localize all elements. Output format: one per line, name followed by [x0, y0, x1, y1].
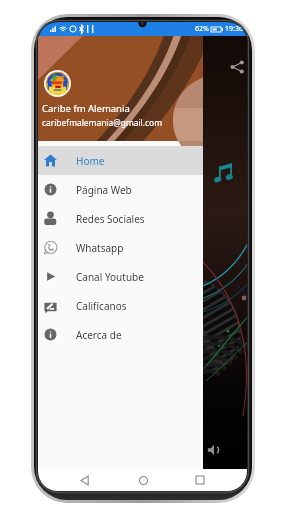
button[interactable]: Canal Youtube: [38, 262, 203, 291]
button[interactable]: Back: [75, 470, 95, 490]
staticText: Caribe fm Alemania: [42, 102, 130, 115]
staticText: Whatsapp: [76, 241, 124, 255]
button[interactable]: Página Web: [38, 175, 203, 204]
staticText: Página Web: [76, 183, 132, 197]
staticText: Califícanos: [76, 299, 127, 313]
staticText: Home: [76, 154, 105, 168]
staticText: Redes Sociales: [76, 212, 145, 226]
staticText: 19:36: [225, 24, 243, 34]
button[interactable]: Volume: [207, 443, 221, 457]
button[interactable]: Acerca de: [38, 320, 203, 349]
staticText: 62%: [195, 24, 209, 34]
button[interactable]: Redes Sociales: [38, 204, 203, 233]
button[interactable]: Home: [133, 470, 153, 490]
button[interactable]: Recents: [190, 470, 210, 490]
button[interactable]: Share: [229, 59, 245, 75]
button[interactable]: Califícanos: [38, 291, 203, 320]
button[interactable]: Caribe fm Alemania: [38, 36, 203, 141]
staticText: Acerca de: [76, 328, 122, 342]
staticText: Canal Youtube: [76, 270, 144, 284]
button[interactable]: Whatsapp: [38, 233, 203, 262]
button[interactable]: Home: [38, 146, 203, 175]
staticText: caribefmalemania@gmail.com: [42, 117, 162, 128]
